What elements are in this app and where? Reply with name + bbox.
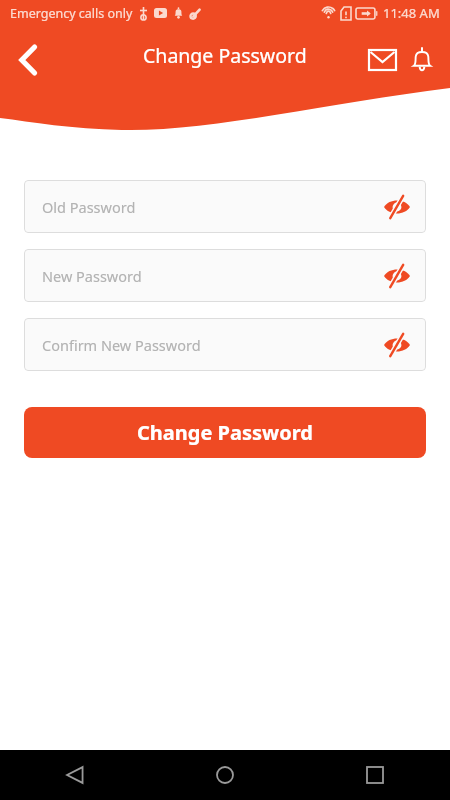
staticText: 11:48 AM	[383, 4, 440, 22]
button[interactable]: Toggle password visibility	[380, 328, 414, 362]
staticText: Confirm New Password	[42, 335, 201, 355]
button[interactable]: Recent apps	[300, 750, 450, 800]
button[interactable]: Confirm New Password	[24, 318, 426, 371]
button[interactable]: Change Password	[24, 407, 426, 458]
button[interactable]: Back	[6, 37, 52, 83]
button[interactable]: Notifications	[402, 40, 442, 80]
button[interactable]: Messages	[362, 40, 402, 80]
button[interactable]: Toggle password visibility	[380, 190, 414, 224]
button[interactable]: New Password	[24, 249, 426, 302]
button[interactable]: Back	[0, 750, 150, 800]
staticText: Change Password	[137, 419, 313, 446]
button[interactable]: Old Password	[24, 180, 426, 233]
staticText: Old Password	[42, 197, 136, 217]
staticText: Emergency calls only	[10, 5, 133, 22]
button[interactable]: Toggle password visibility	[380, 259, 414, 293]
button[interactable]: Home	[150, 750, 300, 800]
staticText: Change Password	[143, 42, 307, 69]
staticText: New Password	[42, 266, 142, 286]
